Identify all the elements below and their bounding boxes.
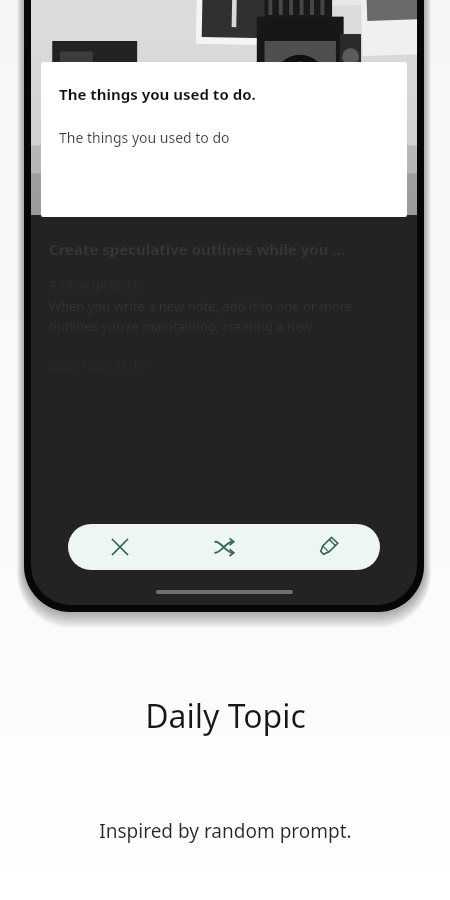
staticText: Daily Topic bbox=[145, 694, 306, 738]
staticText: Create speculative outlines while you … bbox=[49, 239, 346, 259]
staticText: When you write a new note, add it to one… bbox=[49, 297, 399, 335]
button[interactable]: Dismiss bbox=[68, 524, 172, 570]
button[interactable]: Shuffle bbox=[172, 524, 276, 570]
staticText: The things you used to do. bbox=[59, 84, 256, 104]
staticText: Inspired by random prompt. bbox=[99, 818, 352, 844]
button[interactable]: The things you used to do. bbox=[41, 62, 407, 217]
button[interactable]: Edit bbox=[276, 524, 380, 570]
staticText: The things you used to do bbox=[59, 128, 230, 147]
